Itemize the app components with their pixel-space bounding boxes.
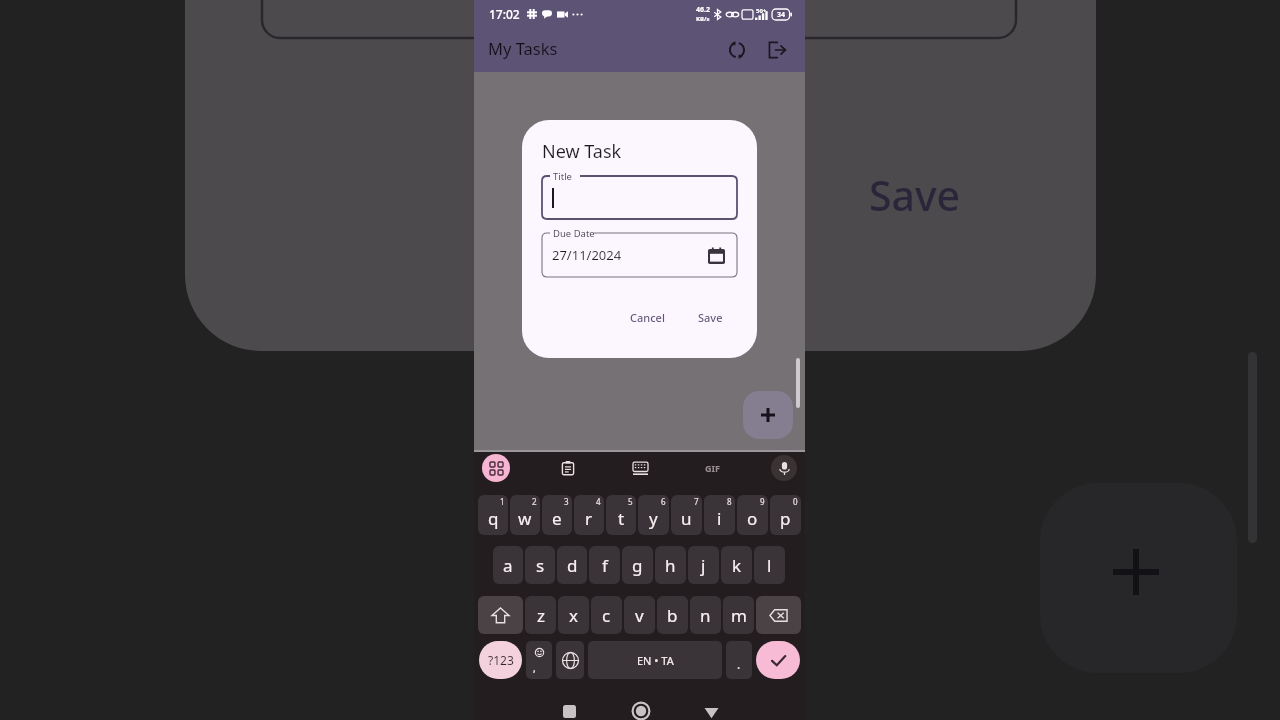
button[interactable]: ?123 [479, 641, 522, 679]
button[interactable]: Enter [756, 641, 800, 679]
staticText: x [569, 604, 578, 627]
staticText: g [632, 554, 643, 577]
button[interactable]: 7 [671, 495, 702, 535]
staticText: 1 [500, 496, 505, 507]
button[interactable]: 8 [704, 495, 735, 535]
staticText: o [747, 507, 758, 530]
staticText: 50+ [756, 7, 767, 15]
button[interactable]: EN • TA [588, 641, 722, 679]
button[interactable]: c [591, 596, 622, 634]
staticText: , [533, 661, 536, 675]
staticText: 3 [564, 496, 569, 507]
staticText: q [488, 507, 499, 530]
button[interactable]: m [723, 596, 754, 634]
staticText: 7 [694, 496, 699, 507]
staticText: f [602, 554, 608, 577]
staticText: Due Date [553, 227, 595, 240]
button[interactable]: 1 [478, 495, 508, 535]
button[interactable]: Backspace [756, 596, 801, 634]
staticText: 17:02 [489, 6, 520, 22]
staticText: . [737, 656, 741, 672]
button[interactable]: 6 [638, 495, 669, 535]
staticText: 34 [777, 10, 786, 20]
button[interactable]: 9 [737, 495, 768, 535]
button[interactable]: j [688, 546, 719, 584]
staticText: k [732, 554, 742, 577]
button[interactable]: Change language [556, 641, 584, 679]
button[interactable]: n [690, 596, 721, 634]
button[interactable]: 2 [510, 495, 540, 535]
button[interactable]: x [558, 596, 589, 634]
staticText: Save [698, 310, 723, 325]
staticText: v [635, 604, 644, 627]
staticText: z [537, 604, 545, 627]
staticText: w [518, 507, 532, 530]
staticText: Cancel [630, 310, 665, 325]
button[interactable]: 3 [542, 495, 572, 535]
button[interactable]: h [655, 546, 686, 584]
staticText: h [665, 554, 676, 577]
staticText: 2 [532, 496, 537, 507]
button[interactable]: Emoji [526, 641, 552, 679]
button[interactable]: 0 [770, 495, 801, 535]
staticText: b [667, 604, 678, 627]
staticText: 5 [628, 496, 633, 507]
staticText: Save [869, 167, 961, 223]
staticText: a [503, 554, 513, 577]
staticText: 0 [793, 496, 798, 507]
button[interactable]: Back [676, 698, 747, 720]
staticText: Title [553, 170, 572, 183]
button[interactable]: k [721, 546, 752, 584]
button[interactable]: 5 [606, 495, 636, 535]
staticText: i [717, 507, 722, 530]
button[interactable]: g [622, 546, 653, 584]
button[interactable]: Shift [478, 596, 523, 634]
button[interactable]: GIF [699, 455, 725, 481]
button[interactable]: . [726, 641, 752, 679]
button[interactable]: 4 [574, 495, 604, 535]
staticText: s [536, 554, 545, 577]
staticText: p [780, 507, 791, 530]
staticText: y [649, 507, 658, 530]
staticText: 27/11/2024 [552, 246, 622, 264]
button[interactable]: Cancel [620, 303, 675, 332]
button[interactable]: Sync [721, 34, 753, 66]
button[interactable]: Recents [534, 698, 605, 720]
button[interactable]: Keyboard settings [627, 455, 653, 481]
button[interactable]: Clipboard [555, 455, 581, 481]
staticText: m [731, 604, 747, 627]
staticText: My Tasks [488, 37, 558, 59]
button[interactable]: Tools [482, 454, 510, 482]
staticText: d [567, 554, 578, 577]
staticText: KB/s [696, 15, 710, 23]
staticText: r [585, 507, 593, 530]
button[interactable]: b [657, 596, 688, 634]
button[interactable]: Home [605, 698, 676, 720]
staticText: 9 [760, 496, 765, 507]
staticText: t [618, 507, 625, 530]
staticText: 6 [661, 496, 666, 507]
staticText: EN • TA [637, 653, 674, 668]
staticText: 4 [596, 496, 601, 507]
button[interactable]: v [624, 596, 655, 634]
button[interactable]: l [754, 546, 785, 584]
button[interactable]: z [525, 596, 556, 634]
button[interactable]: Logout [761, 34, 793, 66]
button[interactable]: d [557, 546, 587, 584]
button[interactable]: Voice input [771, 455, 797, 481]
button[interactable]: a [493, 546, 523, 584]
staticText: u [681, 507, 692, 530]
button[interactable]: Add task [743, 391, 793, 439]
staticText: c [602, 604, 611, 627]
staticText: GIF [705, 462, 720, 474]
button[interactable]: s [525, 546, 555, 584]
button[interactable]: f [589, 546, 620, 584]
staticText: j [701, 554, 706, 577]
staticText: 8 [727, 496, 732, 507]
staticText: e [552, 507, 562, 530]
button[interactable]: Save [688, 303, 733, 332]
staticText: n [700, 604, 711, 627]
staticText: New Task [542, 139, 622, 164]
staticText: ?123 [488, 652, 514, 668]
staticText: 46.2 [696, 5, 710, 15]
